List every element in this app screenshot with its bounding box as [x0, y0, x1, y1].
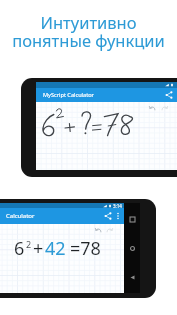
button[interactable]: Undo: [94, 226, 102, 234]
button[interactable]: Home: [127, 243, 137, 253]
button[interactable]: Back: [127, 272, 137, 282]
button[interactable]: More options: [113, 211, 123, 221]
staticText: +: [33, 236, 44, 261]
staticText: Calculator: [6, 212, 35, 220]
button[interactable]: Redo: [105, 226, 113, 234]
staticText: MyScript Calculator: [43, 91, 94, 99]
button[interactable]: Redo: [160, 104, 168, 112]
staticText: 42: [45, 236, 66, 261]
staticText: =78: [70, 236, 101, 261]
staticText: 2: [26, 238, 32, 250]
button[interactable]: Share: [164, 90, 174, 100]
button[interactable]: Recents: [127, 214, 137, 224]
staticText: 6: [14, 236, 25, 261]
button[interactable]: Undo: [148, 104, 156, 112]
staticText: 3:14: [113, 203, 122, 208]
button[interactable]: Share: [103, 211, 113, 221]
staticText: Интуитивно понятные функции: [12, 11, 165, 52]
